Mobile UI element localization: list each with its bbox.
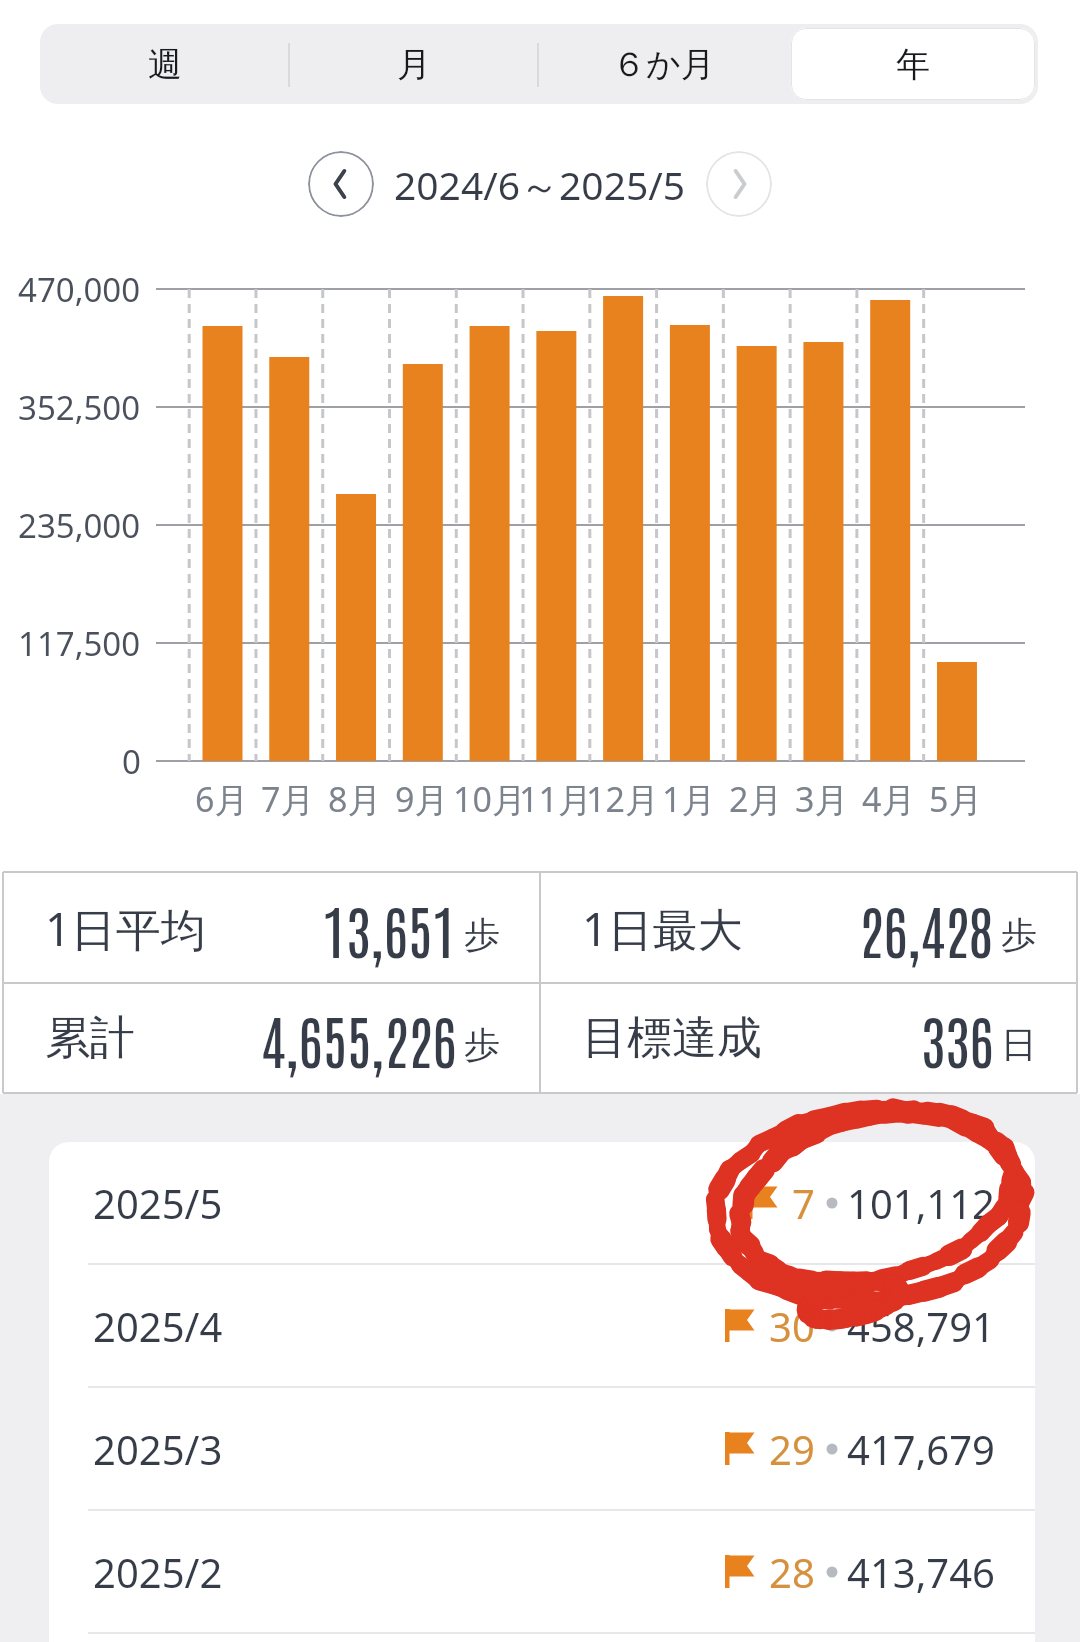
staticText: 13,651 — [322, 891, 457, 966]
button[interactable]: ６か月 — [538, 24, 788, 104]
staticText: 336 — [921, 1001, 994, 1076]
staticText: 117,500 — [18, 621, 141, 666]
staticText: 12月 — [586, 776, 659, 822]
staticText: 29 — [769, 1422, 815, 1476]
staticText: 6月 — [195, 776, 249, 822]
staticText: 8月 — [328, 776, 382, 822]
staticText: 30 — [769, 1299, 815, 1353]
staticText: 11月 — [519, 776, 592, 822]
staticText: 2月 — [729, 776, 783, 822]
staticText: 7 — [792, 1176, 815, 1230]
staticText: 歩 — [464, 1022, 500, 1067]
button[interactable]: 2025/4 — [49, 1265, 1035, 1386]
staticText: 413,746 — [847, 1545, 995, 1599]
staticText: 470,000 — [18, 267, 141, 312]
button[interactable]: 週 — [40, 24, 289, 104]
staticText: 7月 — [261, 776, 315, 822]
staticText: 2025/3 — [93, 1422, 223, 1476]
staticText: 10月 — [453, 776, 526, 822]
staticText: 26,428 — [859, 891, 994, 966]
staticText: 3月 — [795, 776, 849, 822]
staticText: 歩 — [464, 912, 500, 957]
staticText: ６か月 — [612, 43, 715, 86]
staticText: 週 — [148, 43, 182, 86]
staticText: 累計 — [45, 1010, 135, 1067]
staticText: 1日平均 — [45, 898, 206, 959]
button[interactable]: 年 — [788, 24, 1038, 104]
staticText: 2025/2 — [93, 1545, 223, 1599]
staticText: 458,791 — [847, 1299, 995, 1353]
staticText: 4,655,226 — [261, 1001, 457, 1076]
button[interactable]: 2025/2 — [49, 1511, 1035, 1632]
staticText: 417,679 — [847, 1422, 995, 1476]
staticText: 352,500 — [18, 385, 141, 430]
staticText: 5月 — [929, 776, 983, 822]
button[interactable]: 月 — [289, 24, 538, 104]
button[interactable]: 2025/3 — [49, 1388, 1035, 1509]
button[interactable] — [706, 151, 772, 217]
staticText: 年 — [896, 43, 930, 86]
staticText: 1月 — [662, 776, 716, 822]
staticText: 月 — [397, 43, 431, 86]
staticText: 日 — [1001, 1022, 1037, 1067]
staticText: 1日最大 — [582, 898, 743, 959]
staticText: 歩 — [1001, 912, 1037, 957]
staticText: 2025/4 — [93, 1299, 223, 1353]
staticText: 28 — [769, 1545, 815, 1599]
button[interactable] — [308, 151, 374, 217]
staticText: 101,112 — [847, 1176, 995, 1230]
staticText: 235,000 — [18, 503, 141, 548]
staticText: 2024/6～2025/5 — [394, 158, 686, 211]
button[interactable]: 2025/5 — [49, 1142, 1035, 1263]
staticText: 0 — [122, 739, 141, 784]
staticText: 9月 — [395, 776, 449, 822]
staticText: 目標達成 — [582, 1010, 762, 1067]
staticText: 4月 — [862, 776, 916, 822]
staticText: 2025/5 — [93, 1176, 223, 1230]
